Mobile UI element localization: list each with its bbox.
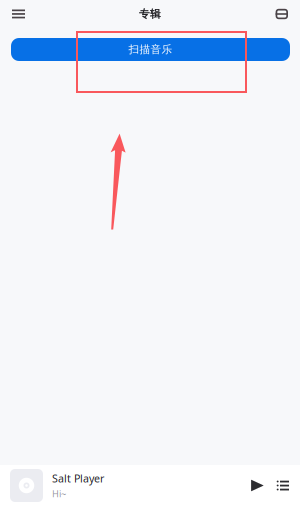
button[interactable]: Playing queue	[277, 481, 289, 490]
button[interactable]: Menu	[0, 1, 48, 27]
button[interactable]: Change layout	[252, 1, 300, 27]
staticText: 扫描音乐	[128, 43, 172, 56]
staticText: 专辑	[139, 7, 161, 20]
staticText: Salt Player	[52, 471, 104, 485]
button[interactable]: 扫描音乐	[11, 38, 290, 61]
staticText: Hi~	[52, 487, 66, 500]
button[interactable]: Play	[251, 480, 277, 491]
button[interactable]: Salt Player	[0, 469, 251, 502]
